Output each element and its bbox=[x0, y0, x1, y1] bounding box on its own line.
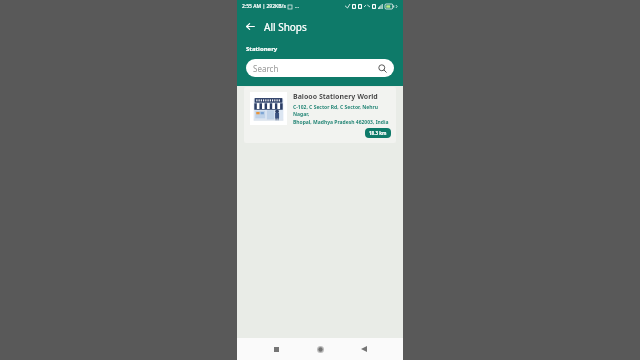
staticText: ... bbox=[295, 3, 300, 10]
staticText: Balooo Stationery World bbox=[293, 92, 378, 102]
staticText: All Shops bbox=[264, 20, 307, 34]
staticText: 18.3 km bbox=[369, 130, 387, 136]
staticText: C-102, C Sector Rd, C Sector, Nehru Naga… bbox=[293, 104, 391, 118]
button[interactable]: Search bbox=[246, 59, 394, 77]
button[interactable]: Back bbox=[237, 13, 264, 40]
button[interactable]: Home bbox=[309, 338, 331, 360]
staticText: Stationery bbox=[246, 45, 278, 53]
staticText: 2:55 AM | 292KB/s bbox=[242, 3, 286, 10]
button[interactable]: Back bbox=[353, 338, 375, 360]
staticText: Search bbox=[253, 63, 279, 74]
button[interactable]: Recent apps bbox=[265, 338, 287, 360]
button[interactable]: Balooo Stationery World bbox=[244, 87, 396, 143]
staticText: Bhopal, Madhya Pradesh 462003, India bbox=[293, 119, 389, 126]
